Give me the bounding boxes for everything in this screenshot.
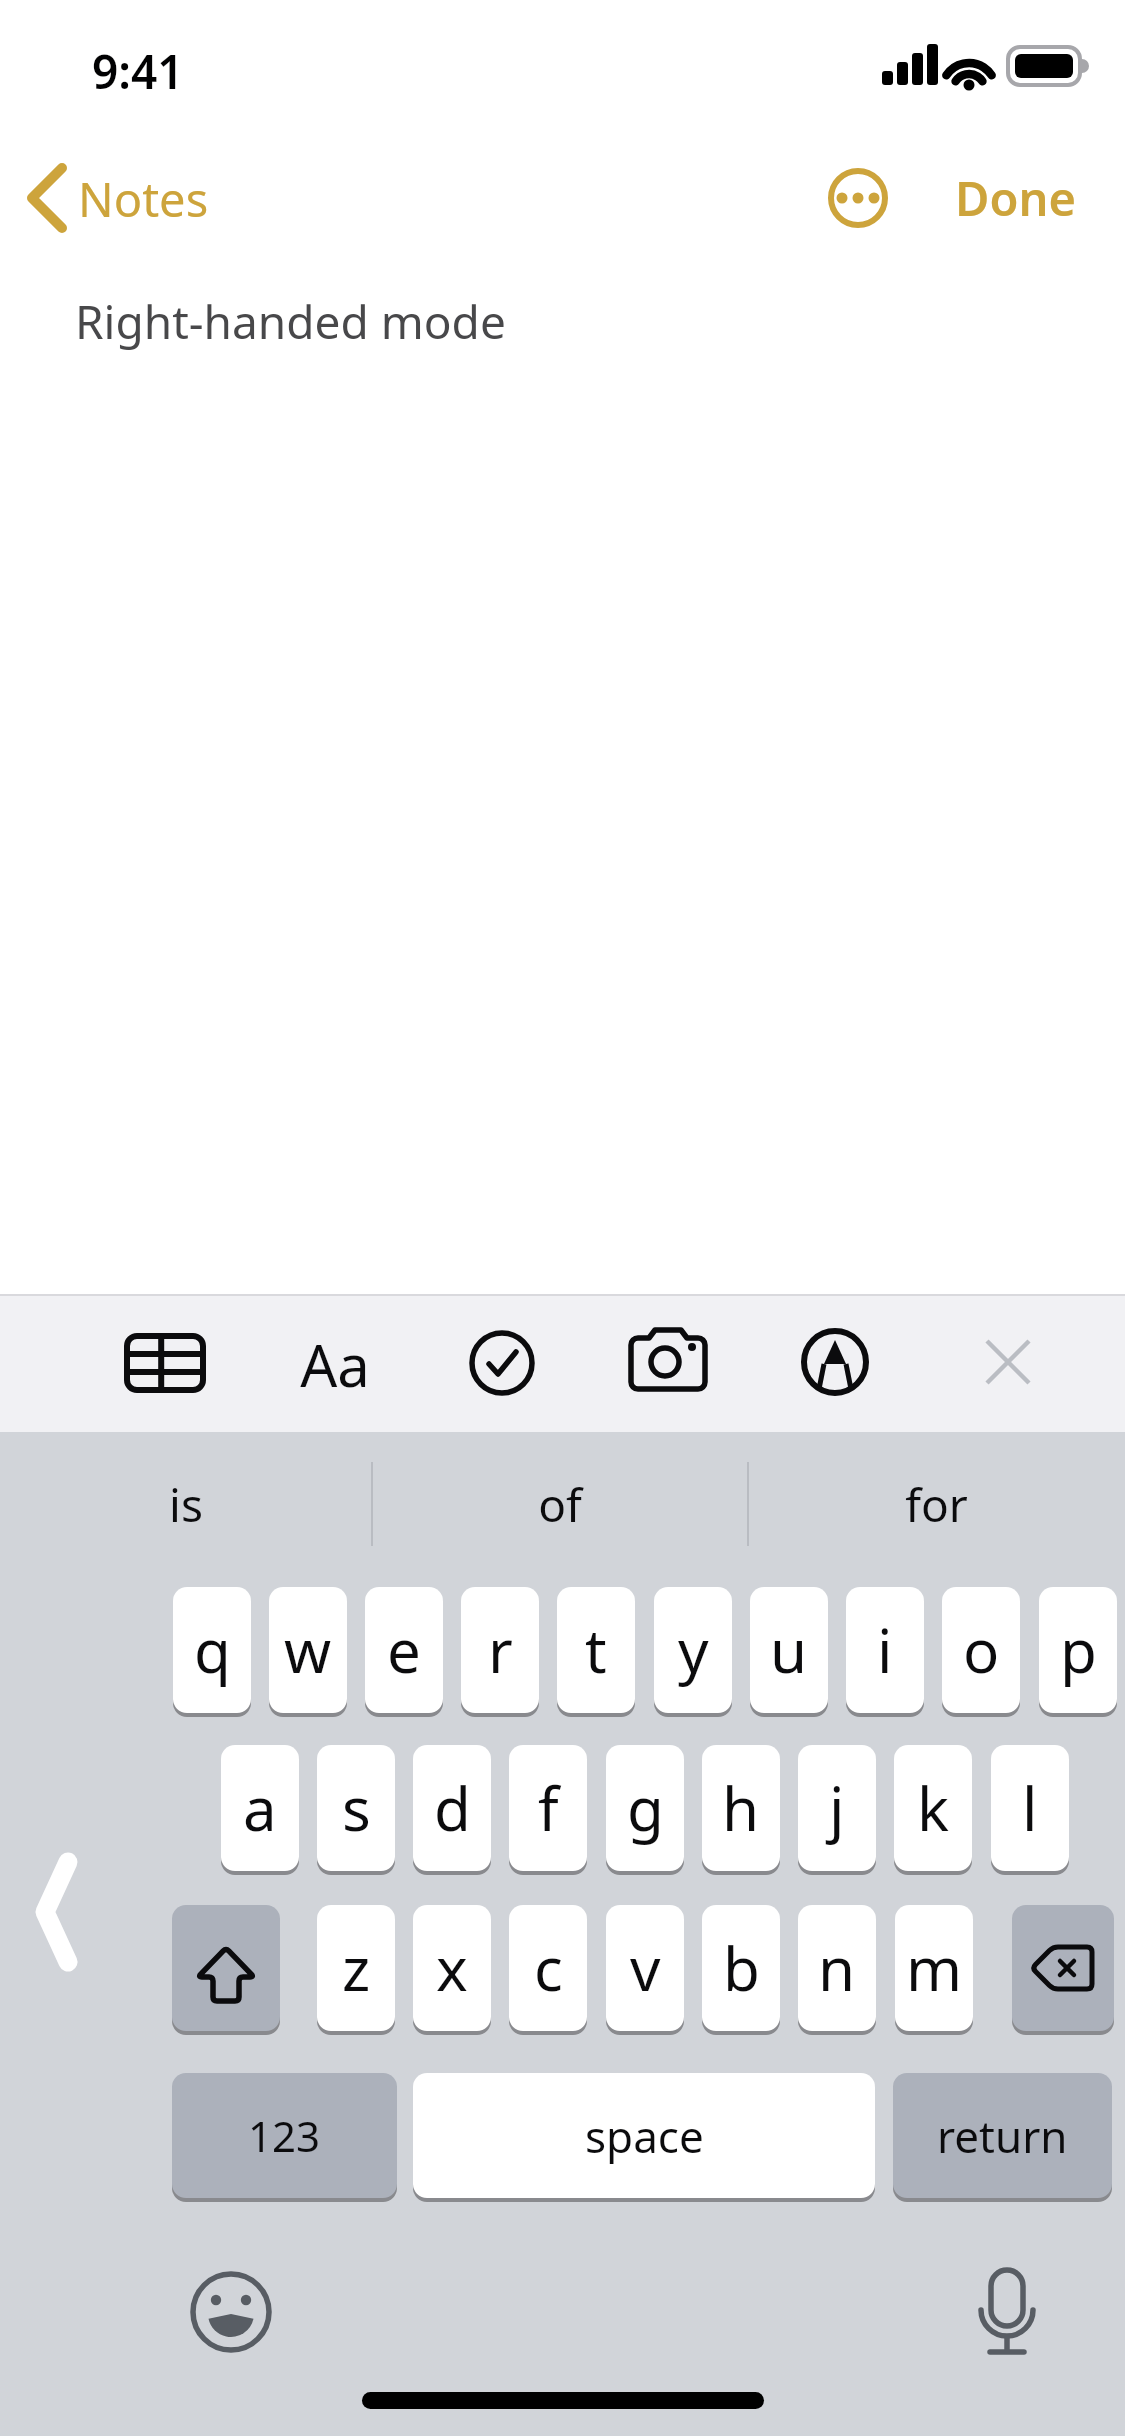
staticText: u [770,1609,808,1691]
staticText: Notes [78,167,209,231]
button[interactable]: j [798,1745,876,1875]
button[interactable]: o [942,1587,1020,1717]
staticText: h [722,1767,760,1849]
staticText: y [678,1609,709,1691]
button[interactable]: r [461,1587,539,1717]
button[interactable] [447,1296,557,1432]
button[interactable]: c [509,1905,587,2035]
staticText: o [963,1609,1000,1691]
button[interactable] [820,160,898,238]
button[interactable]: for [748,1460,1125,1548]
button[interactable] [1012,1905,1114,2035]
staticText: d [434,1767,471,1849]
button[interactable]: is [0,1460,372,1548]
staticText: s [342,1767,371,1849]
button[interactable]: e [365,1587,443,1717]
button[interactable]: m [895,1905,973,2035]
staticText: Done [955,166,1076,230]
button[interactable]: k [894,1745,972,1875]
button[interactable]: b [702,1905,780,2035]
staticText: p [1060,1609,1097,1691]
staticText: k [917,1767,950,1849]
button[interactable]: u [750,1587,828,1717]
staticText: a [243,1767,277,1849]
button[interactable]: h [702,1745,780,1875]
button[interactable]: n [798,1905,876,2035]
staticText: c [534,1927,563,2009]
staticText: l [1022,1767,1038,1849]
button[interactable]: f [509,1745,587,1875]
button[interactable]: v [606,1905,684,2035]
button[interactable]: Done [935,158,1095,238]
button[interactable]: l [991,1745,1069,1875]
button[interactable]: of [372,1460,748,1548]
staticText: i [877,1609,893,1691]
button[interactable] [957,2262,1057,2362]
staticText: Right-handed mode [75,290,506,353]
staticText: f [538,1767,559,1849]
button[interactable]: a [221,1745,299,1875]
button[interactable]: z [317,1905,395,2035]
staticText: b [723,1927,760,2009]
staticText: e [387,1609,421,1691]
button[interactable]: t [557,1587,635,1717]
button[interactable]: 123 [172,2073,397,2202]
button[interactable] [180,2262,280,2362]
staticText: 123 [248,2107,321,2164]
staticText: r [488,1609,513,1691]
staticText: z [342,1927,371,2009]
button[interactable]: return [893,2073,1112,2202]
button[interactable]: Notes [18,158,218,238]
staticText: g [627,1767,664,1849]
staticText: Aa [300,1325,370,1404]
staticText: q [194,1609,231,1691]
button[interactable]: p [1039,1587,1117,1717]
staticText: w [284,1609,332,1691]
staticText: t [585,1609,607,1691]
button[interactable] [613,1296,723,1432]
button[interactable] [110,1296,220,1432]
button[interactable]: y [654,1587,732,1717]
staticText: v [630,1927,661,2009]
staticText: m [906,1927,963,2009]
button[interactable]: q [173,1587,251,1717]
staticText: space [585,2106,704,2166]
button[interactable]: x [413,1905,491,2035]
button[interactable]: g [606,1745,684,1875]
button[interactable]: Aa [280,1296,390,1432]
button[interactable]: s [317,1745,395,1875]
button[interactable] [780,1296,890,1432]
staticText: j [829,1767,845,1849]
button[interactable] [953,1296,1063,1432]
staticText: for [905,1473,968,1536]
button[interactable]: i [846,1587,924,1717]
staticText: n [818,1927,856,2009]
button[interactable]: w [269,1587,347,1717]
button[interactable]: d [413,1745,491,1875]
button[interactable]: space [413,2073,875,2202]
button[interactable] [172,1905,280,2035]
staticText: of [538,1473,582,1536]
staticText: 9:41 [92,40,184,103]
staticText: x [436,1927,468,2009]
staticText: return [937,2106,1068,2166]
staticText: is [169,1473,203,1536]
